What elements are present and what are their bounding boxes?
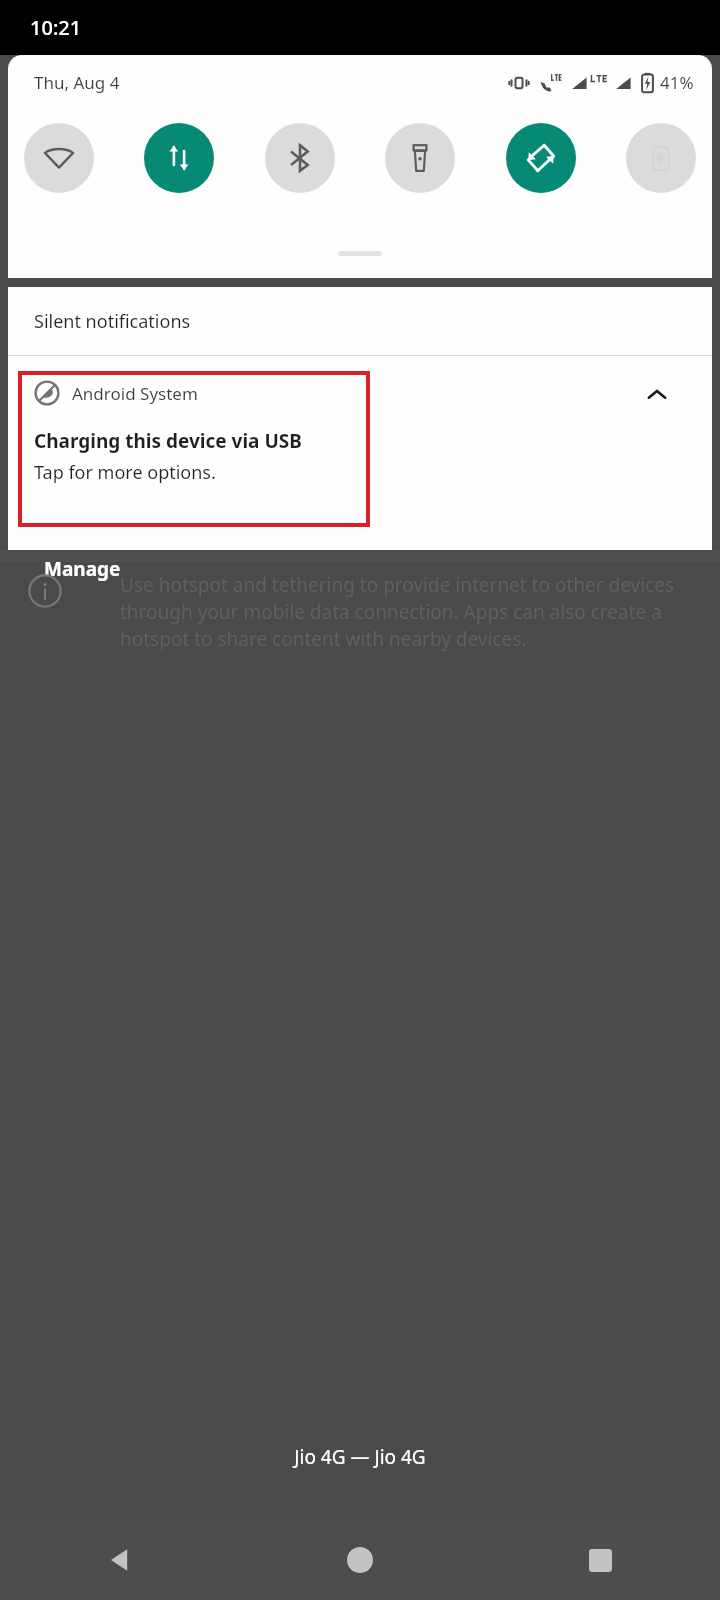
button[interactable]: Silent notifications [8,287,712,355]
button[interactable]: Android System [8,356,712,536]
button[interactable]: Collapse notification [640,378,674,412]
button[interactable]: Mobile data [144,123,214,193]
staticText: 41% [660,71,694,94]
button[interactable]: Flashlight [385,123,455,193]
button[interactable]: Bluetooth [265,123,335,193]
staticText: Manage [44,556,121,582]
staticText: Charging this device via USB [34,428,302,454]
staticText: 10:21 [30,14,82,41]
staticText: Tap for more options. [34,460,216,485]
button[interactable]: Home [330,1530,390,1590]
button[interactable]: Battery Saver [626,123,696,193]
staticText: Jio 4G — Jio 4G [294,1444,426,1470]
staticText: Use hotspot and tethering to provide int… [120,572,692,652]
button[interactable]: Back [90,1530,150,1590]
button[interactable]: Recents [570,1530,630,1590]
button[interactable]: Auto-rotate [506,123,576,193]
button[interactable]: Wi-Fi [24,123,94,193]
staticText: Android System [72,382,198,405]
staticText: Silent notifications [34,309,191,334]
staticText: Thu, Aug 4 [34,71,120,94]
